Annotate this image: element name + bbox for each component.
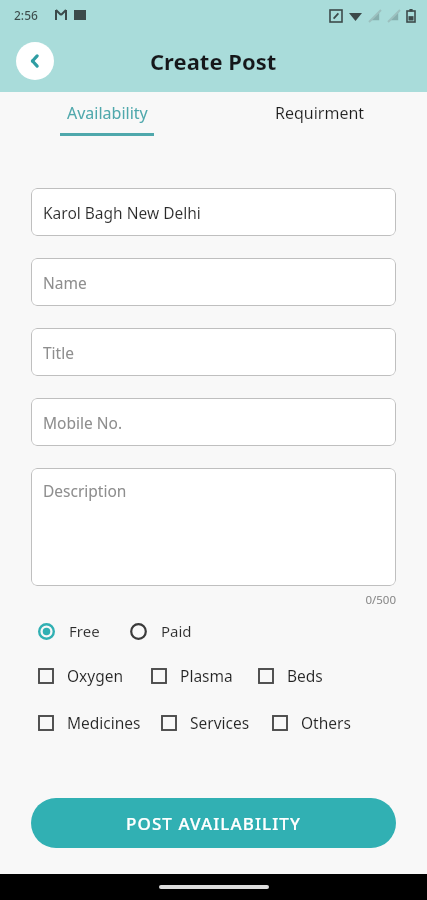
- staticText: Name: [43, 272, 87, 293]
- staticText: Services: [190, 712, 250, 733]
- button[interactable]: Karol Bagh New Delhi: [31, 188, 396, 236]
- staticText: Mobile No.: [43, 412, 123, 433]
- button[interactable]: Name: [31, 258, 396, 306]
- button[interactable]: Description: [31, 468, 396, 586]
- button[interactable]: Medicines: [38, 712, 141, 733]
- button[interactable]: Services: [161, 712, 250, 733]
- button[interactable]: Requirment: [213, 102, 427, 136]
- staticText: Create Post: [150, 46, 277, 76]
- staticText: Plasma: [180, 665, 233, 686]
- button[interactable]: Title: [31, 328, 396, 376]
- staticText: Beds: [287, 665, 323, 686]
- button[interactable]: Availability: [0, 102, 213, 136]
- button[interactable]: POST AVAILABILITY: [31, 798, 396, 848]
- staticText: 2:56: [14, 7, 38, 23]
- staticText: 0/500: [31, 592, 396, 608]
- staticText: Medicines: [67, 712, 141, 733]
- button[interactable]: Paid: [130, 621, 192, 641]
- button[interactable]: Oxygen: [38, 665, 124, 686]
- staticText: Paid: [161, 621, 192, 641]
- button[interactable]: Free: [38, 621, 100, 641]
- button[interactable]: Plasma: [151, 665, 233, 686]
- staticText: Free: [69, 621, 100, 641]
- staticText: Availability: [67, 102, 148, 124]
- staticText: Karol Bagh New Delhi: [43, 202, 201, 223]
- button[interactable]: Others: [272, 712, 351, 733]
- staticText: Title: [43, 342, 74, 363]
- staticText: Requirment: [275, 102, 365, 124]
- staticText: Description: [43, 480, 127, 501]
- button[interactable]: Back: [16, 42, 54, 80]
- staticText: POST AVAILABILITY: [126, 812, 302, 835]
- button[interactable]: Mobile No.: [31, 398, 396, 446]
- staticText: Oxygen: [67, 665, 124, 686]
- staticText: Others: [301, 712, 351, 733]
- button[interactable]: Beds: [258, 665, 323, 686]
